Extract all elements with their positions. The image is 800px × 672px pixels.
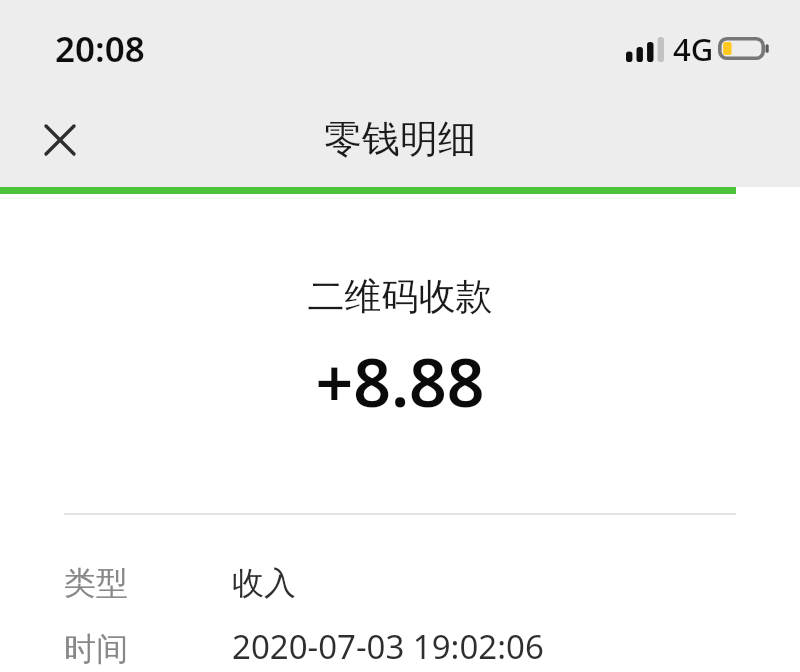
staticText: 收入	[232, 563, 296, 603]
button[interactable]: Close	[27, 107, 93, 173]
other: Battery level low	[718, 37, 769, 60]
staticText: 二维码收款	[0, 273, 800, 320]
staticText: 4G	[673, 28, 714, 70]
staticText: 20:08	[55, 25, 145, 73]
button[interactable]: 类型	[0, 563, 800, 603]
other: Cellular signal strength	[626, 37, 664, 62]
staticText: +8.88	[0, 336, 800, 426]
button[interactable]: 时间	[0, 624, 800, 669]
staticText: 时间	[64, 629, 232, 669]
staticText: 零钱明细	[0, 115, 800, 163]
staticText: 2020-07-03 19:02:06	[232, 624, 544, 669]
staticText: 类型	[64, 563, 232, 603]
